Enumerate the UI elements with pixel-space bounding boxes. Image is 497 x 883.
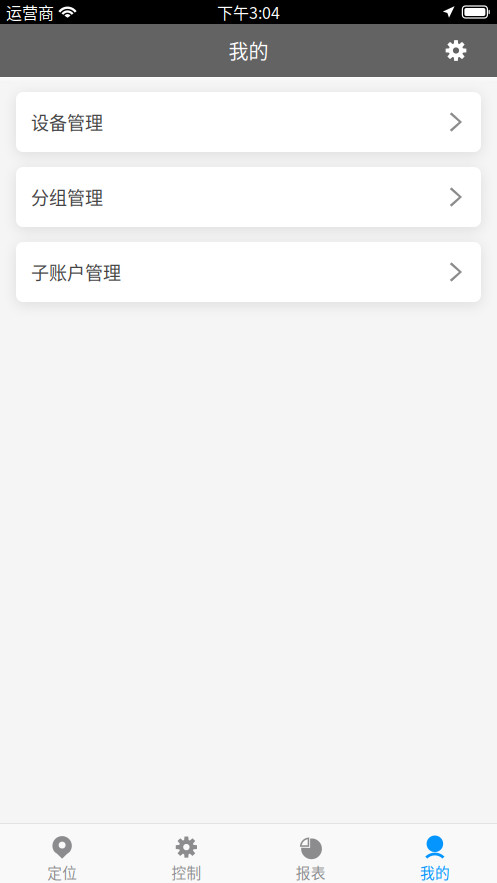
staticText: 分组管理 [31,184,103,210]
staticText: 设备管理 [31,109,103,135]
staticText: 运营商 [6,0,54,24]
staticText: 我的 [228,36,268,65]
staticText: 子账户管理 [31,259,121,285]
staticText: 报表 [296,862,326,883]
staticText: 控制 [171,862,201,883]
button[interactable]: 报表 [248,824,373,883]
button[interactable]: 我的 [373,824,497,883]
button[interactable]: 分组管理 [16,167,481,227]
staticText: 下午3:04 [217,0,280,24]
staticText: 我的 [420,862,450,883]
button[interactable]: 定位 [0,824,124,883]
staticText: 定位 [47,862,77,883]
button[interactable]: 子账户管理 [16,242,481,302]
button[interactable]: 控制 [124,824,248,883]
button[interactable]: 设置 [434,28,478,72]
button[interactable]: 设备管理 [16,92,481,152]
